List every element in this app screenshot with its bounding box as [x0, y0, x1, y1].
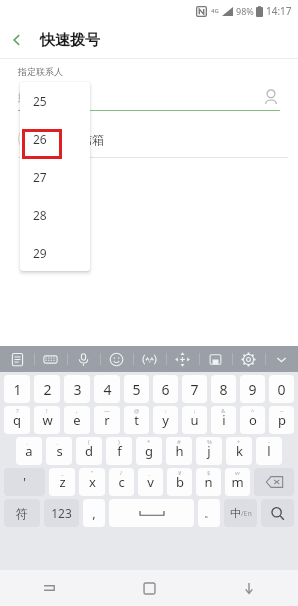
staticText: 符	[16, 506, 28, 521]
staticText: @	[134, 407, 140, 415]
button[interactable]: 中	[224, 499, 257, 527]
button[interactable]: 2	[34, 375, 60, 403]
staticText: ,	[76, 407, 78, 415]
button[interactable]: s	[46, 437, 72, 465]
button[interactable]: Emoji	[100, 346, 133, 372]
button[interactable]: x	[79, 468, 105, 496]
button[interactable]: z	[49, 468, 75, 496]
button[interactable]: j	[196, 437, 222, 465]
button[interactable]: Hide keyboard	[199, 570, 298, 606]
button[interactable]: d	[76, 437, 102, 465]
staticText: k	[236, 442, 243, 460]
staticText: ?	[16, 407, 19, 415]
button[interactable]: i	[211, 406, 236, 434]
button[interactable]: o	[240, 406, 265, 434]
button[interactable]: f	[106, 437, 132, 465]
button[interactable]: 25	[20, 82, 90, 120]
staticText: 29	[33, 245, 47, 261]
button[interactable]: p	[269, 406, 294, 434]
button[interactable]: c	[109, 468, 134, 496]
button[interactable]: 9	[240, 375, 265, 403]
button[interactable]: u	[182, 406, 207, 434]
staticText: 、	[56, 438, 62, 446]
staticText: %	[207, 438, 212, 446]
button[interactable]: 123	[44, 499, 79, 527]
button[interactable]: k	[226, 437, 252, 465]
button[interactable]: Home	[100, 570, 199, 606]
button[interactable]: 6	[153, 375, 178, 403]
button[interactable]: 7	[182, 375, 207, 403]
staticText: 姓名或号码	[18, 90, 73, 104]
staticText: ;	[194, 407, 196, 415]
button[interactable]: Collapse	[265, 346, 298, 372]
button[interactable]: Space	[109, 499, 194, 527]
staticText: g	[145, 442, 153, 460]
button[interactable]: r	[94, 406, 120, 434]
button[interactable]: Kaomoji	[133, 346, 166, 372]
button[interactable]: ,	[83, 499, 105, 527]
button[interactable]: v	[138, 468, 163, 496]
staticText: v	[147, 473, 154, 491]
button[interactable]: q	[4, 406, 30, 434]
staticText: l	[267, 442, 271, 460]
button[interactable]: 。	[198, 499, 220, 527]
button[interactable]: '	[4, 468, 45, 496]
staticText: a	[25, 442, 33, 460]
button[interactable]: w	[34, 406, 60, 434]
button[interactable]: Voice input	[67, 346, 100, 372]
staticText: h	[175, 442, 184, 460]
button[interactable]: t	[124, 406, 149, 434]
staticText: -	[268, 438, 270, 446]
button[interactable]: 符	[4, 499, 40, 527]
staticText: 4	[103, 380, 112, 399]
button[interactable]: b	[167, 468, 192, 496]
staticText: ¥	[178, 469, 182, 477]
staticText: &	[221, 407, 226, 415]
button[interactable]: 0	[269, 375, 294, 403]
staticText: 9	[248, 380, 257, 399]
button[interactable]: 3	[64, 375, 90, 403]
button[interactable]: 27	[20, 158, 90, 196]
staticText: 2	[43, 380, 52, 399]
staticText: 中	[230, 506, 241, 520]
button[interactable]: 8	[211, 375, 236, 403]
button[interactable]: Search	[261, 499, 294, 527]
staticText: "	[91, 469, 94, 477]
button[interactable]: n	[196, 468, 221, 496]
button[interactable]: 28	[20, 196, 90, 234]
button[interactable]: Recents	[0, 570, 100, 606]
staticText: w	[42, 411, 53, 429]
staticText: 4G	[211, 7, 219, 15]
button[interactable]: Save	[199, 346, 232, 372]
button[interactable]: 26	[20, 120, 90, 158]
staticText: $	[207, 469, 211, 477]
staticText: _	[61, 469, 64, 477]
staticText: z	[59, 473, 66, 491]
staticText: n	[204, 473, 213, 491]
button[interactable]: Settings	[232, 346, 265, 372]
button[interactable]: m	[225, 468, 250, 496]
button[interactable]: 5	[124, 375, 149, 403]
button[interactable]: 29	[20, 234, 90, 271]
button[interactable]: Move cursor	[166, 346, 199, 372]
button[interactable]: Clipboard	[0, 346, 34, 372]
staticText: p	[278, 411, 286, 429]
staticText: )	[118, 438, 120, 446]
button[interactable]: Keyboard layout	[34, 346, 67, 372]
button[interactable]: y	[153, 406, 178, 434]
button[interactable]: Backspace	[254, 468, 294, 496]
button[interactable]: 4	[94, 375, 120, 403]
staticText: 26	[33, 131, 47, 147]
button[interactable]: 语音信箱	[0, 121, 298, 157]
button[interactable]: h	[166, 437, 192, 465]
button[interactable]: Back	[0, 23, 34, 57]
button[interactable]: l	[256, 437, 282, 465]
button[interactable]: 1	[4, 375, 30, 403]
staticText: #	[177, 438, 181, 446]
button[interactable]: a	[16, 437, 42, 465]
staticText: !	[46, 407, 48, 415]
button[interactable]: g	[136, 437, 162, 465]
button[interactable]: e	[64, 406, 90, 434]
button[interactable]: 姓名或号码	[18, 84, 280, 110]
staticText: 25	[33, 93, 47, 109]
